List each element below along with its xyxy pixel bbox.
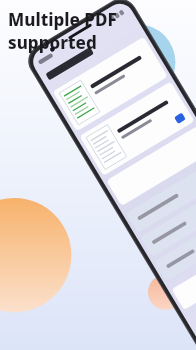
button[interactable]: PDF To Image preview — [96, 85, 192, 265]
staticText: Multiple PDF — [8, 8, 117, 31]
staticText: supported — [8, 31, 97, 54]
